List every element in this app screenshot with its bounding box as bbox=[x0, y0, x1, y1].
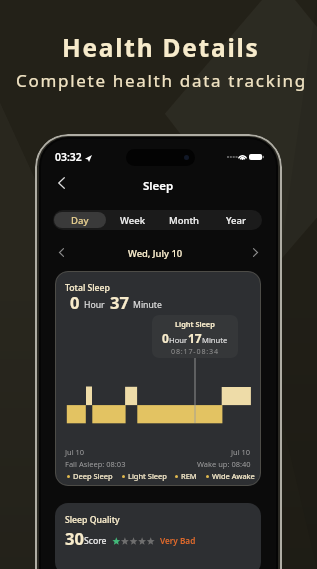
staticText: Jul 10 bbox=[65, 447, 85, 457]
staticText: Score bbox=[84, 535, 107, 547]
staticText: Hour bbox=[84, 299, 105, 311]
staticText: Wake up: 08:40 bbox=[197, 459, 251, 469]
staticText: Very Bad bbox=[160, 535, 196, 546]
button[interactable]: Week bbox=[106, 212, 158, 228]
button[interactable]: Previous day bbox=[53, 244, 69, 260]
button[interactable]: Month bbox=[158, 212, 210, 228]
staticText: Day bbox=[71, 214, 89, 227]
staticText: Wed, July 10 bbox=[128, 247, 183, 260]
staticText: Fall Asleep: 08:03 bbox=[65, 459, 126, 469]
staticText: Light Sleep bbox=[175, 319, 215, 329]
staticText: Deep Sleep bbox=[73, 471, 113, 481]
staticText: 03:32 bbox=[55, 150, 82, 164]
staticText: 30 bbox=[65, 527, 84, 549]
button[interactable]: Year bbox=[210, 212, 262, 228]
staticText: Jul 10 bbox=[231, 447, 251, 457]
button[interactable]: Back bbox=[49, 171, 73, 195]
staticText: Complete health data tracking bbox=[16, 69, 307, 92]
staticText: 0 bbox=[162, 330, 169, 346]
staticText: Sleep bbox=[143, 178, 174, 194]
staticText: Week bbox=[120, 214, 145, 227]
staticText: REM bbox=[181, 471, 197, 481]
staticText: 08:17-08:34 bbox=[171, 346, 219, 356]
staticText: Year bbox=[226, 214, 246, 227]
button[interactable]: Day bbox=[54, 212, 106, 228]
staticText: 17 bbox=[188, 330, 202, 346]
staticText: Total Sleep bbox=[65, 282, 110, 294]
staticText: Sleep Quality bbox=[65, 514, 120, 526]
staticText: Health Details bbox=[62, 31, 260, 64]
staticText: Minute bbox=[202, 335, 228, 345]
staticText: Minute bbox=[133, 299, 162, 311]
staticText: Hour bbox=[169, 335, 188, 345]
staticText: Wide Awake bbox=[212, 471, 255, 481]
staticText: 0 bbox=[70, 291, 80, 313]
staticText: Month bbox=[169, 214, 200, 227]
button[interactable]: Next day bbox=[247, 244, 263, 260]
staticText: 37 bbox=[110, 291, 129, 313]
staticText: Light Sleep bbox=[128, 471, 167, 481]
